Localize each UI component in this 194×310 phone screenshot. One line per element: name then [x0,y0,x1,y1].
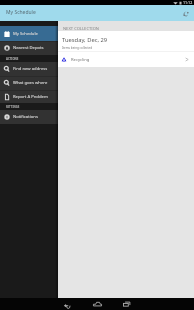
button[interactable]: Back [56,298,78,310]
button[interactable]: Recents [116,298,138,310]
staticText: My Schedule [6,9,36,16]
staticText: Notifications [13,114,38,120]
staticText: ACTIONS [6,57,19,61]
staticText: Recycling [71,57,90,63]
button[interactable]: My Schedule [0,26,58,41]
button[interactable]: Refresh [180,8,191,19]
staticText: What goes where [13,80,48,86]
staticText: SETTINGS [6,105,20,109]
button[interactable]: Notifications [0,110,58,124]
staticText: 11:12 [183,0,193,5]
staticText: NEXT COLLECTION [63,26,99,32]
button[interactable]: Find new address [0,62,58,76]
staticText: Nearest Depots [13,45,44,51]
staticText: My Schedule [13,31,38,37]
button[interactable]: Report A Problem [0,90,58,103]
button[interactable]: Nearest Depots [0,41,58,55]
button[interactable]: Recycling [58,52,194,67]
staticText: Tuesday, Dec, 29 [62,36,108,44]
staticText: Report A Problem [13,94,48,100]
staticText: Items being collected [62,46,93,50]
button[interactable]: Home [86,298,108,310]
button[interactable]: What goes where [0,76,58,90]
staticText: Find new address [13,66,48,72]
